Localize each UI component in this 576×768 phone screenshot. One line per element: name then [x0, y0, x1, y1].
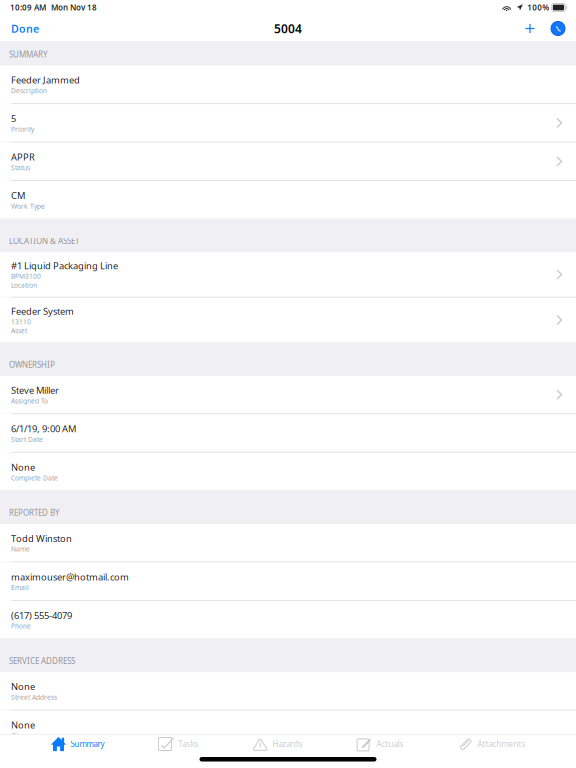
button[interactable]: None — [0, 453, 576, 490]
staticText: Assigned To — [11, 396, 48, 405]
staticText: Hazards — [272, 739, 302, 749]
staticText: APPR — [11, 151, 35, 163]
staticText: None — [11, 719, 35, 731]
staticText: Mon Nov 18 — [51, 2, 97, 13]
staticText: maximouser@hotmail.com — [11, 571, 129, 583]
button[interactable]: None — [0, 672, 576, 710]
button[interactable]: Done — [9, 17, 41, 40]
staticText: CM — [11, 189, 25, 202]
button[interactable]: #1 Liquid Packaging Line — [0, 252, 576, 297]
staticText: 5 — [11, 112, 16, 125]
button[interactable]: Actuals — [348, 732, 411, 755]
staticText: BPM3100 — [11, 272, 41, 281]
staticText: (617) 555-4079 — [11, 609, 72, 621]
staticText: Todd Winston — [11, 532, 72, 544]
staticText: Summary — [70, 739, 104, 749]
staticText: Work Type — [11, 202, 45, 210]
staticText: Name — [11, 544, 30, 553]
staticText: Priority — [11, 125, 34, 133]
staticText: Email — [11, 583, 29, 592]
staticText: OWNERSHIP — [9, 359, 55, 370]
staticText: SERVICE ADDRESS — [9, 655, 75, 666]
button[interactable]: Feeder System — [0, 298, 576, 342]
staticText: Attachments — [477, 739, 525, 749]
button[interactable]: Todd Winston — [0, 524, 576, 561]
button[interactable]: 5 — [0, 104, 576, 142]
staticText: SUMMARY — [9, 49, 48, 60]
staticText: City — [11, 731, 22, 740]
button[interactable]: APPR — [0, 143, 576, 180]
staticText: Phone — [11, 621, 31, 630]
button[interactable]: Tasks — [150, 732, 206, 755]
staticText: Done — [11, 21, 39, 36]
staticText: Tasks — [178, 739, 198, 749]
staticText: REPORTED BY — [9, 507, 60, 518]
staticText: Feeder System — [11, 305, 74, 317]
button[interactable]: Add — [517, 17, 548, 39]
button[interactable]: Hazards — [244, 732, 310, 755]
staticText: Location — [11, 281, 37, 290]
staticText: None — [11, 680, 35, 693]
staticText: 100% — [527, 2, 549, 13]
button[interactable]: Feeder Jammed — [0, 66, 576, 103]
button[interactable]: Steve Miller — [0, 376, 576, 413]
button[interactable]: Summary — [42, 732, 112, 755]
staticText: Complete Date — [11, 473, 58, 482]
button[interactable]: Attachments — [449, 732, 533, 755]
button[interactable]: maximouser@hotmail.com — [0, 562, 576, 600]
button[interactable]: CM — [0, 181, 576, 219]
staticText: Asset — [11, 326, 27, 335]
staticText: 10:09 AM — [10, 2, 46, 13]
button[interactable]: None — [0, 711, 576, 748]
staticText: LOCATION & ASSET — [9, 236, 79, 246]
staticText: #1 Liquid Packaging Line — [11, 259, 118, 272]
staticText: Steve Miller — [11, 384, 59, 396]
staticText: 13110 — [11, 317, 31, 326]
button[interactable]: Timer — [548, 16, 568, 40]
staticText: Start Date — [11, 435, 43, 444]
staticText: Description — [11, 86, 47, 95]
staticText: Street Address — [11, 693, 57, 701]
staticText: None — [11, 461, 35, 473]
staticText: 6/1/19, 9:00 AM — [11, 422, 76, 435]
button[interactable]: (617) 555-4079 — [0, 601, 576, 638]
staticText: Feeder Jammed — [11, 74, 80, 86]
staticText: Status — [11, 163, 30, 172]
button[interactable]: None — [0, 749, 576, 768]
staticText: 5004 — [274, 20, 302, 36]
staticText: Actuals — [376, 739, 403, 749]
button[interactable]: 6/1/19, 9:00 AM — [0, 414, 576, 452]
